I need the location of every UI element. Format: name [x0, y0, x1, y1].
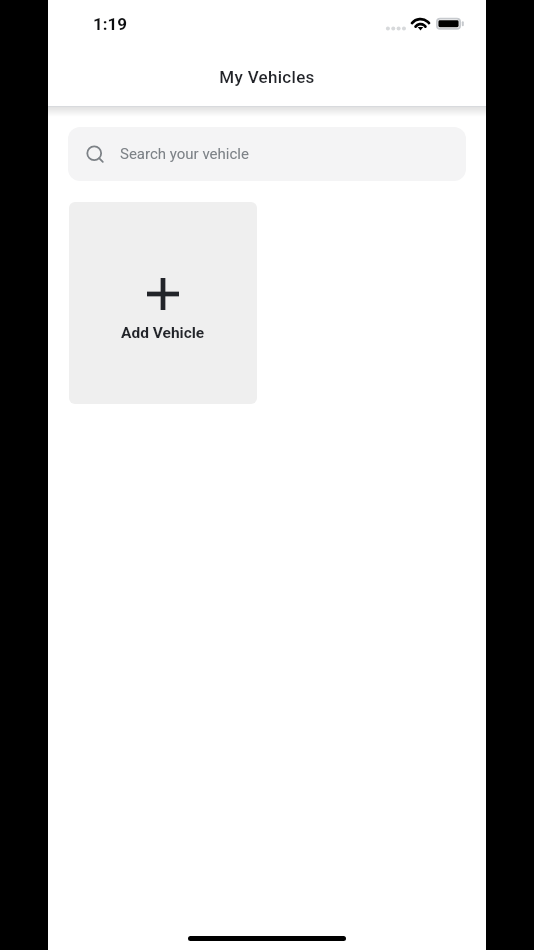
other: Cellular, Wi-Fi and battery status	[386, 7, 464, 41]
staticText: My Vehicles	[219, 67, 315, 87]
button[interactable]: Add Vehicle	[69, 202, 257, 404]
button[interactable]: Search	[68, 127, 466, 181]
staticText: Search your vehicle	[120, 145, 249, 163]
staticText: 1:19	[93, 14, 128, 34]
staticText: Add Vehicle	[121, 324, 205, 342]
other: Search	[86, 145, 104, 163]
